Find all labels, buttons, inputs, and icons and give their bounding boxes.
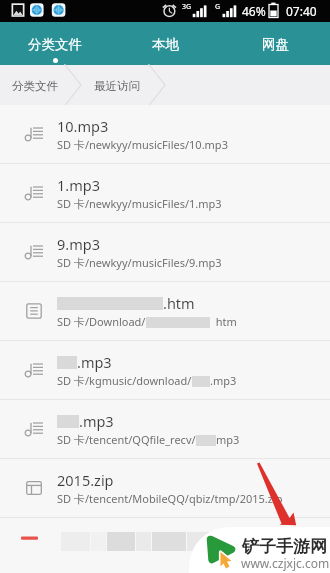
button[interactable]: 1.mp3 <box>0 164 330 223</box>
staticText: 最近访问 <box>94 79 140 93</box>
staticText: 1.mp3 <box>57 175 100 195</box>
staticText: 本地 <box>152 36 179 53</box>
button[interactable]: 最近访问 <box>82 65 151 105</box>
staticText: SD 卡/newkyy/musicFiles/9.mp3 <box>57 255 222 270</box>
button[interactable]: 分类文件 <box>0 22 110 65</box>
button[interactable]: 分类文件 <box>0 65 69 105</box>
staticText: G <box>215 2 221 12</box>
button[interactable]: .htm <box>0 282 330 341</box>
staticText: .mp3 <box>77 352 112 372</box>
staticText: SD 卡/Download/ <box>57 314 146 329</box>
staticText: .htm <box>163 293 195 313</box>
button[interactable]: .mp3 <box>0 341 330 400</box>
staticText: SD 卡/newkyy/musicFiles/1.mp3 <box>57 196 222 211</box>
staticText: 2015.zip <box>57 470 114 490</box>
button[interactable]: 2015.zip <box>0 459 330 518</box>
staticText: htm <box>210 314 237 329</box>
staticText: SD 卡/kgmusic/download/ <box>57 373 192 388</box>
staticText: 10.mp3 <box>57 116 109 136</box>
staticText: .mp3 <box>210 373 237 388</box>
button[interactable]: .mp3 <box>0 400 330 459</box>
staticText: SD 卡/tencent/MobileQQ/qbiz/tmp/2015.zip <box>57 491 283 506</box>
staticText: 铲子手游网 <box>242 536 327 557</box>
staticText: mp3 <box>216 432 240 447</box>
staticText: 07:40 <box>286 3 317 19</box>
button[interactable]: 9.mp3 <box>0 223 330 282</box>
staticText: 分类文件 <box>28 36 82 53</box>
staticText: 分类文件 <box>12 79 58 93</box>
button[interactable]: 本地 <box>110 22 220 65</box>
staticText: 网盘 <box>262 36 289 53</box>
staticText: www.czjxjc.com <box>241 555 330 571</box>
button[interactable]: 网盘 <box>220 22 330 65</box>
staticText: 3G <box>182 2 192 12</box>
staticText: SD 卡/newkyy/musicFiles/10.mp3 <box>57 137 228 152</box>
button[interactable]: 10.mp3 <box>0 105 330 164</box>
button[interactable] <box>0 518 330 573</box>
staticText: 9.mp3 <box>57 234 100 254</box>
staticText: 46% <box>242 3 266 19</box>
staticText: .mp3 <box>79 411 114 431</box>
staticText: SD 卡/tencent/QQfile_recv/ <box>57 432 196 447</box>
